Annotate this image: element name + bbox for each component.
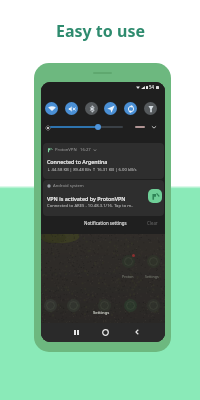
button[interactable]: Home bbox=[102, 329, 109, 336]
button[interactable]: App 1 bbox=[147, 255, 160, 268]
staticText: 54 bbox=[149, 84, 155, 90]
button[interactable]: Quick setting 0 bbox=[45, 102, 58, 115]
button[interactable]: Android system bbox=[43, 180, 164, 216]
button[interactable]: Quick setting 1 bbox=[65, 102, 78, 115]
button[interactable]: App 2 bbox=[44, 299, 57, 312]
button[interactable]: App 5 bbox=[124, 299, 137, 312]
button[interactable]: Notification settings bbox=[84, 220, 127, 226]
button[interactable]: App 6 bbox=[147, 299, 160, 312]
staticText: Settings bbox=[145, 274, 159, 279]
button[interactable]: ProtonVPN bbox=[43, 143, 164, 179]
button[interactable]: App 0 bbox=[122, 255, 135, 268]
staticText: Easy to use bbox=[56, 20, 145, 42]
staticText: Settings bbox=[93, 310, 110, 316]
button[interactable]: Back bbox=[134, 329, 140, 335]
staticText: ↓ 44.58 KB | 89.48 B/s ↑ 16.31 KB | 6.00… bbox=[47, 167, 137, 173]
staticText: VPN is activated by ProtonVPN bbox=[47, 195, 126, 202]
staticText: Connected to ARES - 10.48.3.1/16. Tap to… bbox=[47, 203, 134, 209]
staticText: Proton bbox=[122, 274, 134, 279]
staticText: ProtonVPN bbox=[55, 147, 77, 153]
staticText: Connected to Argentina bbox=[47, 158, 108, 165]
button[interactable]: Quick setting 4 bbox=[124, 102, 137, 115]
button[interactable]: Quick setting 2 bbox=[85, 102, 98, 115]
staticText: 16:27 bbox=[80, 147, 91, 153]
button[interactable]: Recents bbox=[74, 330, 79, 335]
button[interactable]: Quick setting 3 bbox=[104, 102, 117, 115]
button[interactable]: Clear bbox=[147, 220, 158, 226]
button[interactable]: Expand bbox=[151, 124, 157, 130]
button[interactable]: App 4 bbox=[98, 299, 111, 312]
button[interactable]: Quick setting 5 bbox=[144, 102, 157, 115]
button[interactable]: App 3 bbox=[67, 299, 80, 312]
staticText: Android system bbox=[53, 183, 84, 189]
